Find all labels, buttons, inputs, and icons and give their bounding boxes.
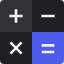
button[interactable]: Add [0,0,32,32]
button[interactable]: Subtract [32,0,64,32]
button[interactable]: Equals [32,32,64,64]
button[interactable]: Multiply [0,32,32,64]
